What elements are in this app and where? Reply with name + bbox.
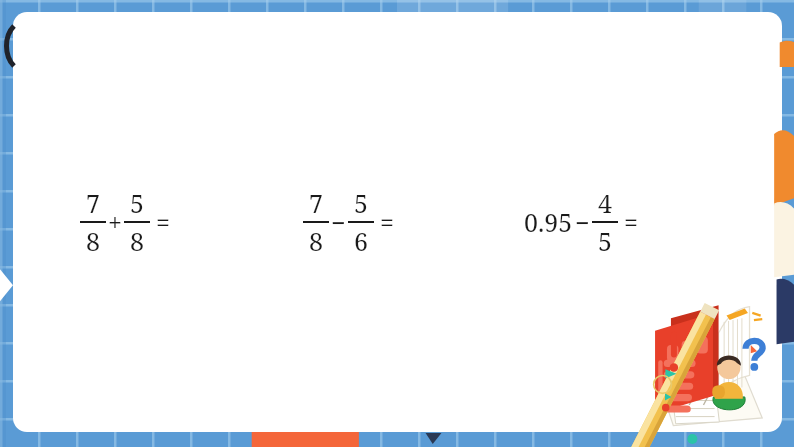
staticText: 5 [130,186,144,220]
button[interactable]: 7 [80,186,170,258]
staticText: = [624,205,638,239]
staticText: 7 [86,186,100,220]
other: Study illustration [0,0,794,447]
staticText: 8 [309,224,323,258]
staticText: − [331,205,346,239]
button[interactable]: 0.95 [524,186,638,258]
staticText: 5 [598,224,612,258]
staticText: = [156,205,170,239]
staticText: + [108,205,122,239]
staticText: 8 [130,224,144,258]
staticText: 0.95 [524,205,573,239]
staticText: 4 [598,186,612,220]
staticText: − [575,205,590,239]
staticText: 5 [354,186,368,220]
staticText: 6 [354,224,368,258]
button[interactable]: 7 [303,186,394,258]
staticText: 7 [309,186,323,220]
staticText: = [380,205,394,239]
staticText: 8 [86,224,100,258]
